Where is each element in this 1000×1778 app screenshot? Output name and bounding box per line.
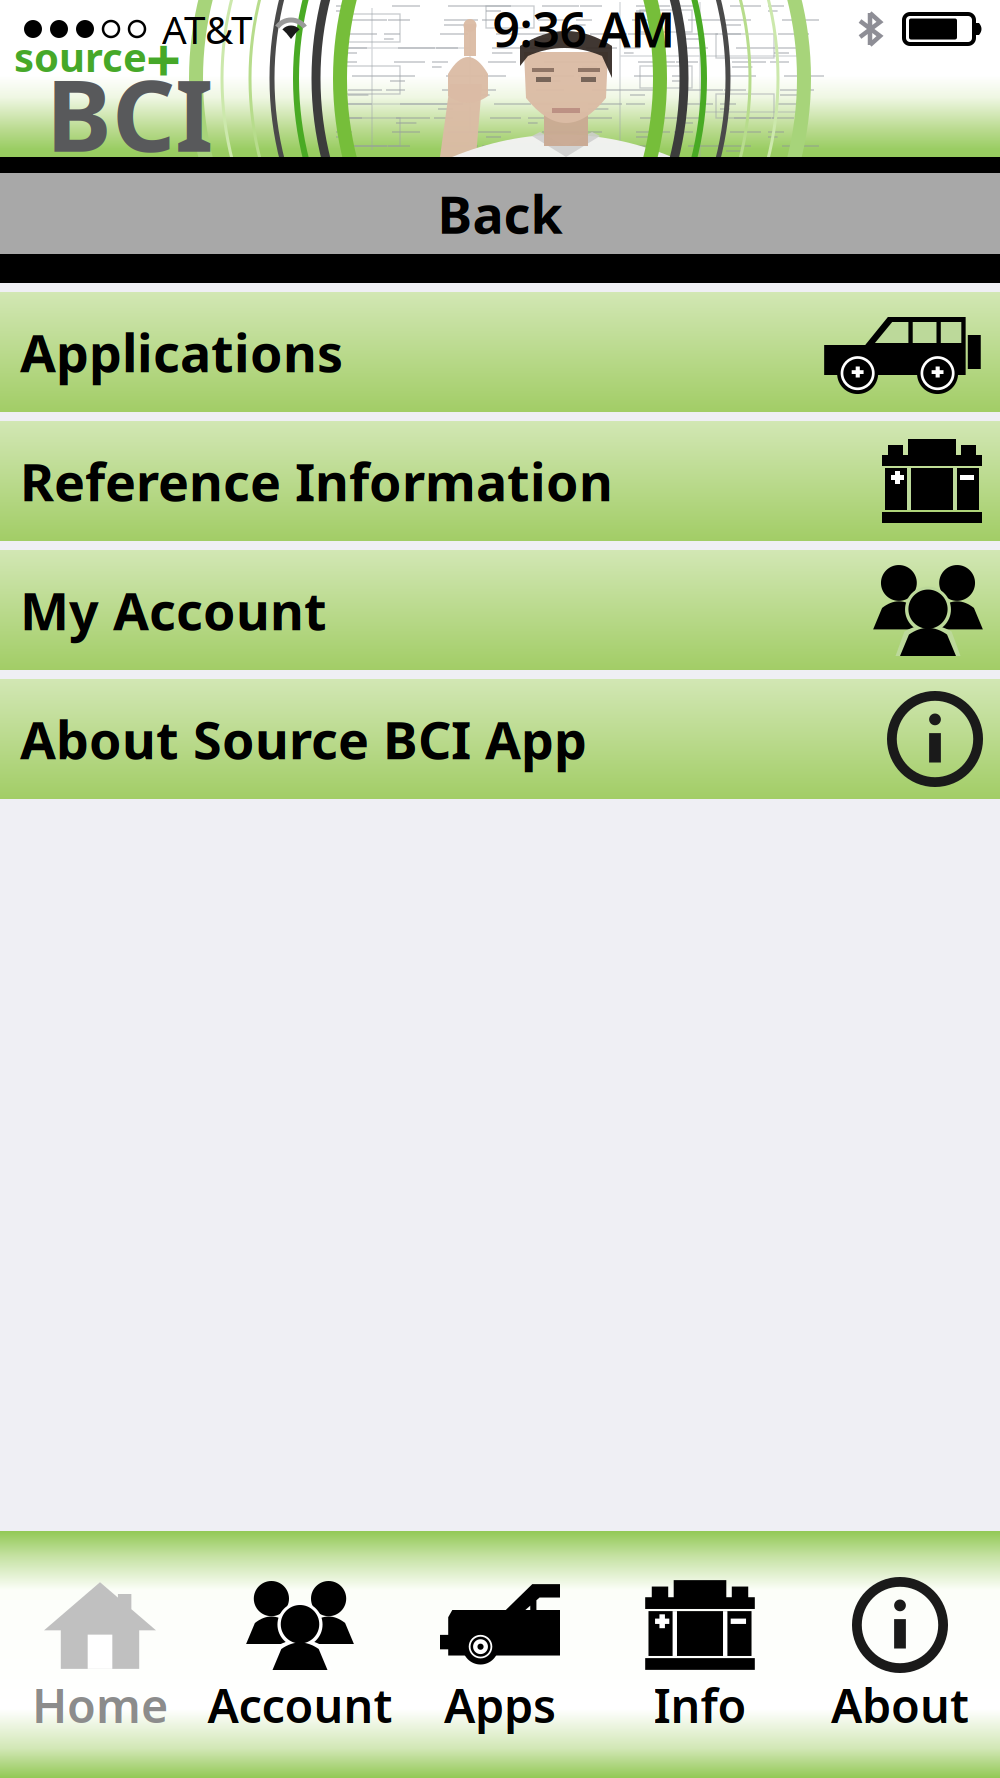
button[interactable]: Applications <box>0 292 1000 412</box>
staticText: Applications <box>20 317 343 387</box>
button[interactable]: Info <box>600 1531 800 1778</box>
staticText: + <box>146 18 181 99</box>
staticText: Back <box>437 179 562 248</box>
staticText: Home <box>32 1674 168 1736</box>
staticText: About Source BCI App <box>20 704 587 774</box>
staticText: AT&T <box>162 3 252 55</box>
button[interactable]: Apps <box>400 1531 600 1778</box>
staticText: 9:36 AM <box>492 0 675 61</box>
button[interactable]: Account <box>200 1531 400 1778</box>
staticText: My Account <box>20 575 327 645</box>
button[interactable]: Back <box>0 173 1000 254</box>
staticText: About <box>831 1674 969 1736</box>
staticText: Reference Information <box>20 446 613 516</box>
button[interactable]: Reference Information <box>0 421 1000 541</box>
button[interactable]: My Account <box>0 550 1000 670</box>
staticText: BCI <box>46 48 213 179</box>
staticText: Info <box>653 1674 746 1736</box>
button[interactable]: About Source BCI App <box>0 679 1000 799</box>
staticText: Account <box>207 1674 392 1736</box>
button[interactable]: About <box>800 1531 1000 1778</box>
staticText: source <box>14 30 147 83</box>
staticText: Apps <box>444 1674 556 1736</box>
button[interactable]: Home <box>0 1531 200 1778</box>
